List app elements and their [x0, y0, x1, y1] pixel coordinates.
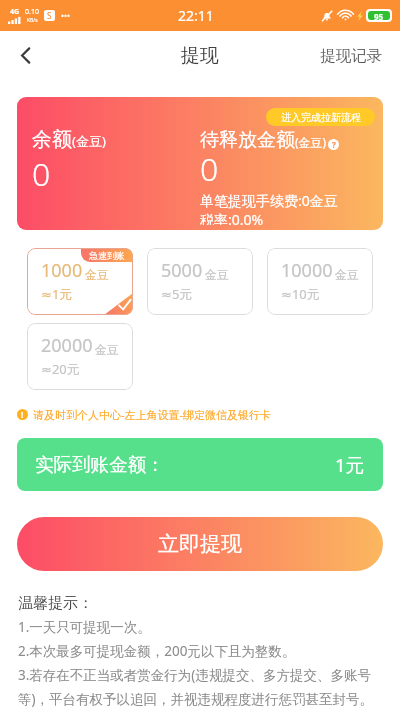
staticText: !	[21, 409, 24, 420]
staticText: 金豆	[335, 267, 359, 282]
staticText: 金豆	[85, 267, 109, 282]
staticText: KB/s	[27, 17, 38, 24]
staticText: 22:11	[178, 6, 214, 25]
staticText: 0	[32, 152, 51, 196]
button[interactable]: 20000	[27, 323, 133, 390]
staticText: 95	[374, 11, 384, 20]
staticText: 温馨提示：	[18, 594, 93, 613]
staticText: ≈1元	[41, 285, 73, 303]
staticText: 税率:0.0%	[200, 210, 264, 225]
button[interactable]: 进入完成拉新流程	[266, 108, 375, 126]
staticText: (金豆)	[72, 132, 106, 150]
button[interactable]: Help	[328, 139, 339, 150]
staticText: 2.本次最多可提现金额，200元以下且为整数。	[18, 642, 296, 660]
staticText: 10000	[281, 258, 333, 283]
staticText: 提现记录	[320, 46, 382, 66]
staticText: 1元	[335, 452, 365, 477]
staticText: 急速到账	[89, 250, 125, 261]
staticText: 5000	[161, 258, 203, 283]
staticText: 实际到账金额：	[35, 453, 165, 476]
button[interactable]: 提现记录	[310, 38, 400, 74]
staticText: 金豆	[205, 267, 229, 282]
staticText: 提现	[181, 44, 219, 68]
staticText: 进入完成拉新流程	[281, 111, 361, 124]
button[interactable]: 5000	[147, 248, 253, 315]
staticText: 单笔提现手续费:0金豆	[200, 191, 338, 210]
staticText: 金豆	[95, 342, 119, 357]
staticText: 0	[200, 147, 219, 191]
staticText: 余额	[32, 127, 72, 152]
staticText: 4G	[10, 7, 20, 17]
staticText: 立即提现	[158, 531, 242, 557]
staticText: (金豆)	[295, 134, 327, 150]
staticText: 3.若存在不正当或者赏金行为(违规提交、多方提交、多账号等)，平台有权予以追回，…	[18, 666, 386, 708]
staticText: ≈10元	[281, 285, 320, 303]
staticText: •••	[61, 10, 71, 21]
staticText: 1.一天只可提现一次。	[18, 618, 151, 636]
button[interactable]: 10000	[267, 248, 373, 315]
staticText: ?	[332, 139, 336, 150]
staticText: 20000	[41, 333, 93, 358]
staticText: 待释放金额	[200, 128, 295, 152]
staticText: ≈5元	[161, 285, 193, 303]
staticText: 请及时到个人中心-左上角设置-绑定微信及银行卡	[33, 407, 272, 422]
staticText: 1000	[41, 258, 83, 283]
button[interactable]: 急速到账	[27, 248, 133, 315]
button[interactable]: 立即提现	[17, 517, 383, 571]
button[interactable]: Back	[0, 31, 50, 80]
staticText: ≈20元	[41, 360, 80, 378]
staticText: S	[47, 10, 52, 21]
staticText: 0.10	[25, 7, 39, 17]
